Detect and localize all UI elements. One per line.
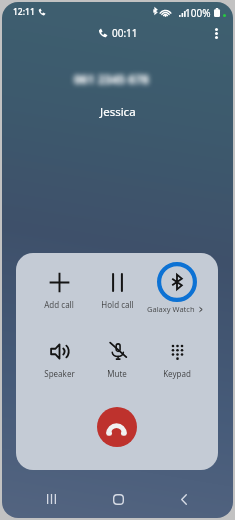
staticText: 061 2345 678 — [74, 71, 149, 87]
button[interactable]: More options — [204, 21, 228, 45]
button[interactable]: Galaxy Watch — [143, 261, 211, 321]
staticText: Keypad — [163, 368, 191, 379]
staticText: Mute — [107, 368, 127, 379]
button[interactable]: Recents — [34, 484, 68, 514]
staticText: 12:11 — [13, 6, 35, 18]
button[interactable]: Add call — [31, 268, 87, 316]
staticText: Speaker — [44, 368, 75, 379]
button[interactable]: Home — [101, 484, 135, 514]
button[interactable]: Keypad — [149, 337, 205, 385]
button[interactable]: Back — [167, 484, 201, 514]
button[interactable]: End call — [97, 407, 137, 447]
button[interactable]: Mute — [89, 337, 145, 385]
staticText: 100% — [185, 6, 211, 20]
staticText: Hold call — [101, 299, 134, 310]
button[interactable]: Speaker — [31, 337, 87, 385]
staticText: Galaxy Watch — [147, 304, 195, 314]
staticText: Add call — [44, 299, 74, 310]
staticText: Jessica — [100, 104, 136, 120]
button[interactable]: Hold call — [89, 268, 145, 316]
staticText: 00:11 — [112, 26, 138, 40]
